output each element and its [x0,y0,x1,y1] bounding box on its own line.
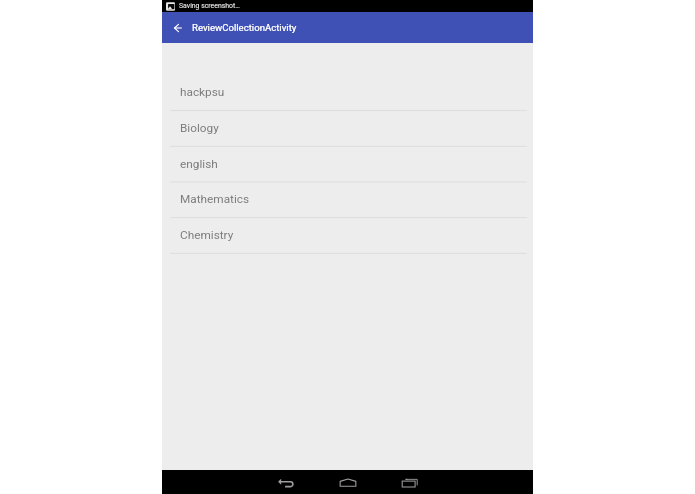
staticText: english [180,157,218,171]
button[interactable]: Biology [162,111,533,147]
button[interactable]: Chemistry [162,218,533,254]
staticText: ReviewCollectionActivity [192,22,297,33]
button[interactable]: hackpsu [162,75,533,111]
staticText: Biology [180,121,219,135]
staticText: Saving screenshot… [179,2,240,10]
button[interactable]: Home [328,470,368,494]
button[interactable]: Back [266,470,306,494]
staticText: Chemistry [180,228,234,242]
staticText: Mathematics [180,192,250,206]
button[interactable]: Mathematics [162,182,533,218]
button[interactable]: Navigate up [162,12,192,43]
staticText: hackpsu [180,85,225,99]
button[interactable]: Recent apps [389,470,429,494]
button[interactable]: english [162,147,533,183]
